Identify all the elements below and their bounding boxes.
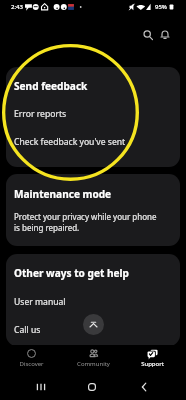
button[interactable]: Support	[124, 345, 180, 372]
button[interactable]: Check feedback you've sent	[6, 136, 180, 162]
staticText: Other ways to get help	[14, 266, 129, 280]
button[interactable]: Community	[65, 345, 121, 372]
staticText: Maintenance mode	[14, 187, 112, 201]
staticText: Send feedback	[14, 79, 88, 93]
staticText: Community	[77, 360, 110, 368]
staticText: Check feedback you've sent	[14, 136, 126, 148]
staticText: Support	[141, 360, 164, 368]
button[interactable]: Notifications	[155, 25, 175, 45]
staticText: 95%	[155, 3, 167, 11]
button[interactable]: Scroll to top	[83, 314, 104, 335]
staticText: Error reports	[14, 108, 67, 120]
button[interactable]: Call us	[6, 324, 180, 346]
staticText: Protect your privacy while your phone is…	[14, 211, 157, 233]
staticText: Call us	[14, 324, 41, 336]
staticText: User manual	[14, 296, 66, 308]
button[interactable]: Discover	[3, 345, 59, 372]
button[interactable]: Back	[133, 376, 155, 398]
staticText: Discover	[19, 360, 44, 368]
button[interactable]: Search	[138, 25, 158, 45]
button[interactable]: User manual	[6, 296, 180, 322]
button[interactable]: Error reports	[6, 108, 180, 134]
staticText: 2:43	[11, 3, 23, 11]
button[interactable]: Recents	[30, 376, 52, 398]
button[interactable]: Home	[81, 376, 103, 398]
